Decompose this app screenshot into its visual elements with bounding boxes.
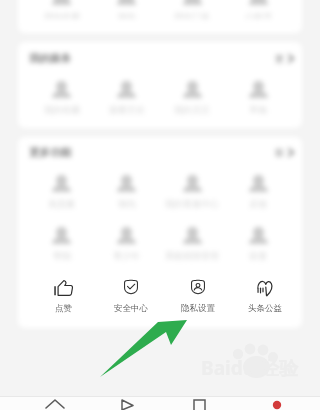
other: 更多 bbox=[288, 148, 294, 157]
button[interactable]: 免流量 bbox=[29, 173, 94, 209]
staticText: 安全中心 bbox=[114, 303, 148, 314]
button[interactable]: 我的客服中心 bbox=[159, 173, 225, 209]
other: 点赞 bbox=[54, 280, 73, 296]
other: 安全中心 bbox=[124, 280, 138, 296]
staticText: 我的客服中心 bbox=[165, 198, 219, 209]
other: 头条公益 bbox=[257, 280, 273, 296]
other: 隐私设置 bbox=[191, 280, 205, 296]
button[interactable]: 草稿 bbox=[225, 79, 291, 115]
staticText: 更 bbox=[275, 53, 284, 64]
button[interactable]: 我的关注 bbox=[159, 79, 225, 115]
button[interactable]: 部 bbox=[275, 147, 294, 158]
staticText: 部 bbox=[275, 147, 284, 158]
staticText: 钱包 bbox=[118, 198, 136, 209]
button[interactable]: 钱包 bbox=[94, 173, 159, 209]
button[interactable]: 安全中心 bbox=[97, 280, 164, 314]
staticText: 我的收藏 bbox=[44, 104, 80, 115]
staticText: Baidu 经验 bbox=[201, 355, 298, 381]
button[interactable]: 青少年 bbox=[94, 225, 159, 261]
staticText: 草稿 bbox=[249, 104, 267, 115]
button[interactable]: 我的订单 bbox=[159, 0, 225, 19]
button[interactable]: 反馈 bbox=[225, 173, 291, 209]
button[interactable]: 观看历史 bbox=[94, 79, 159, 115]
other: 更多 bbox=[288, 54, 294, 63]
button[interactable]: 帮助 bbox=[29, 225, 94, 261]
button[interactable]: 钱包 bbox=[94, 0, 159, 19]
button[interactable]: 头条公益 bbox=[231, 280, 298, 314]
staticText: 头条公益 bbox=[248, 303, 282, 314]
staticText: 观看历史 bbox=[109, 104, 145, 115]
button[interactable]: 系统权限管理 bbox=[159, 225, 225, 261]
button[interactable]: 设置 bbox=[225, 225, 291, 261]
staticText: 隐私设置 bbox=[181, 303, 215, 314]
button[interactable]: 我的收藏 bbox=[29, 0, 94, 19]
staticText: 更多功能 bbox=[29, 146, 71, 159]
staticText: 我的服务 bbox=[29, 52, 71, 65]
button[interactable]: 点赞 bbox=[30, 280, 97, 314]
button[interactable]: 我的收藏 bbox=[29, 79, 94, 115]
button[interactable]: 隐私设置 bbox=[164, 280, 231, 314]
button[interactable]: 更 bbox=[275, 53, 294, 64]
staticText: 帮助 bbox=[53, 250, 71, 261]
staticText: 点赞 bbox=[55, 303, 72, 314]
button[interactable]: 小程序 bbox=[225, 0, 291, 19]
staticText: 免流量 bbox=[48, 198, 75, 209]
